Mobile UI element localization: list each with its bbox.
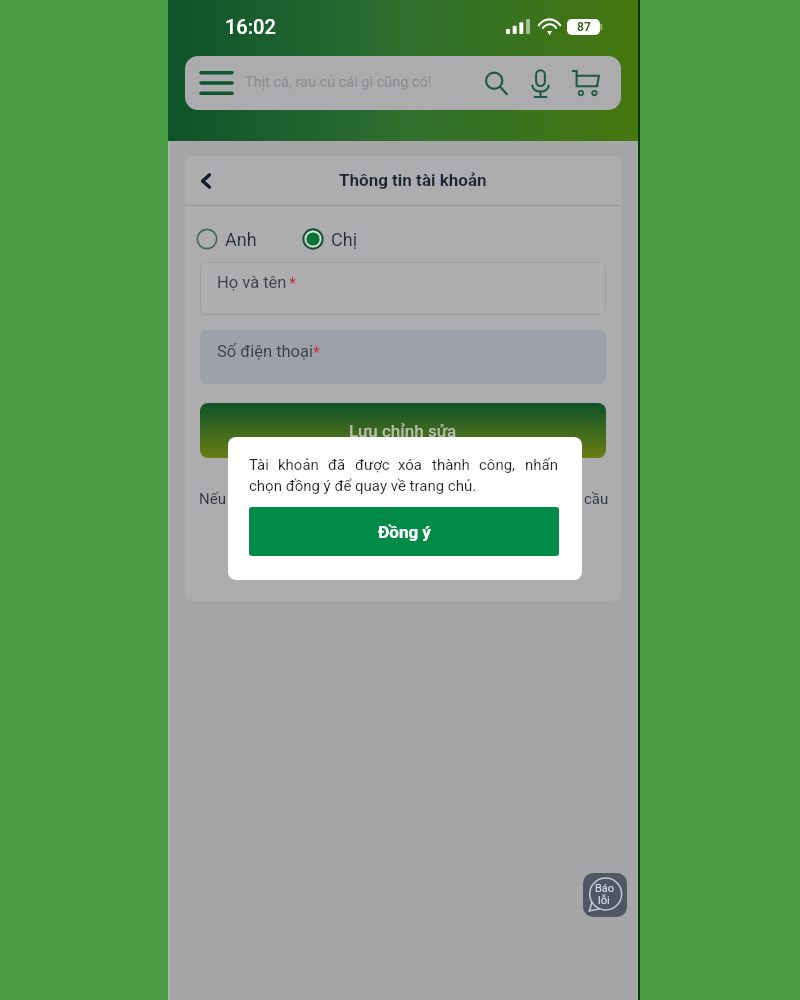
staticText: Lưu chỉnh sửa: [349, 421, 457, 441]
button[interactable]: Báo lỗi: [583, 873, 627, 917]
staticText: được: [355, 456, 390, 474]
staticText: Tài: [249, 456, 269, 474]
staticText: thành: [432, 456, 470, 474]
button[interactable]: Search: [485, 72, 508, 95]
staticText: khoản: [278, 456, 319, 474]
staticText: lỗi: [598, 894, 610, 907]
button[interactable]: Đồng ý: [249, 507, 559, 556]
staticText: *: [313, 343, 320, 362]
staticText: Chị: [331, 229, 358, 250]
staticText: cầu: [584, 490, 609, 508]
staticText: xóa: [398, 456, 423, 474]
staticText: Số điện thoại: [217, 342, 314, 361]
staticText: *: [289, 274, 296, 293]
staticText: Báo: [595, 882, 615, 895]
staticText: Thịt cá, rau củ cái gì cũng có!: [245, 74, 432, 91]
staticText: công,: [479, 456, 516, 474]
staticText: Nếu: [199, 490, 226, 508]
staticText: Họ và tên: [217, 273, 287, 292]
staticText: 16:02: [225, 15, 276, 38]
button[interactable]: Thịt cá, rau củ cái gì cũng có!: [185, 56, 621, 110]
staticText: Anh: [225, 229, 257, 250]
button[interactable]: Back: [187, 162, 225, 200]
staticText: nhấn: [525, 456, 558, 474]
button[interactable]: Voice search: [531, 69, 550, 98]
button[interactable]: Anh: [196, 228, 257, 250]
button[interactable]: Lưu chỉnh sửa: [200, 403, 606, 458]
staticText: chọn đồng ý để quay về trang chủ.: [249, 477, 477, 495]
staticText: Đồng ý: [378, 522, 431, 542]
button[interactable]: Họ và tên: [200, 262, 606, 315]
button[interactable]: Cart: [572, 69, 599, 97]
button[interactable]: Số điện thoại: [200, 330, 606, 384]
staticText: đã: [328, 456, 346, 474]
button[interactable]: Chị: [302, 228, 358, 250]
staticText: 87: [577, 20, 591, 34]
staticText: Thông tin tài khoản: [339, 170, 487, 190]
